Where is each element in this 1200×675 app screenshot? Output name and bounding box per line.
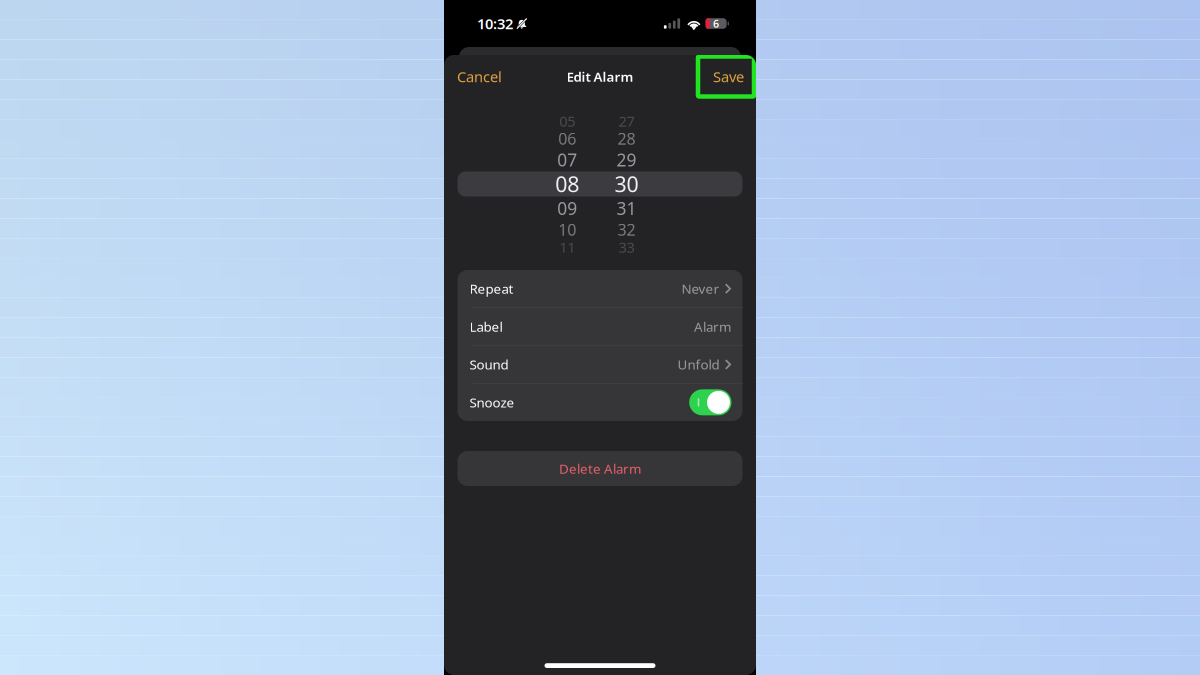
staticText: 09 [557, 197, 577, 220]
staticText: 08 [555, 170, 579, 198]
button[interactable]: Sound [457, 346, 742, 383]
staticText: 29 [616, 148, 636, 171]
staticText: 31 [616, 197, 636, 220]
staticText: 6 [713, 16, 719, 31]
staticText: 06 [558, 128, 576, 149]
button[interactable]: Label [457, 308, 742, 345]
staticText: Sound [469, 356, 508, 373]
staticText: 27 [618, 111, 634, 131]
staticText: 10 [558, 219, 576, 240]
button[interactable]: Repeat [457, 270, 742, 307]
staticText: 33 [618, 237, 634, 257]
staticText: 05 [559, 111, 575, 131]
staticText: Edit Alarm [566, 68, 633, 85]
staticText: Alarm [694, 318, 731, 335]
staticText: Delete Alarm [559, 460, 641, 477]
staticText: 10:32 [477, 14, 513, 33]
staticText: Snooze [469, 393, 514, 411]
staticText: Never [681, 280, 719, 297]
staticText: Save [713, 67, 744, 86]
staticText: 07 [557, 148, 577, 171]
staticText: Repeat [469, 280, 513, 297]
staticText: 32 [617, 219, 635, 240]
button[interactable]: Cancel [444, 55, 512, 98]
button[interactable]: Save [698, 56, 754, 96]
staticText: Cancel [457, 67, 502, 86]
button[interactable]: Snooze [689, 389, 731, 415]
button[interactable]: Delete Alarm [457, 451, 742, 486]
staticText: 28 [617, 128, 635, 149]
staticText: Unfold [677, 356, 719, 373]
staticText: 30 [614, 170, 638, 198]
staticText: 11 [559, 237, 575, 257]
staticText: Label [469, 318, 502, 335]
